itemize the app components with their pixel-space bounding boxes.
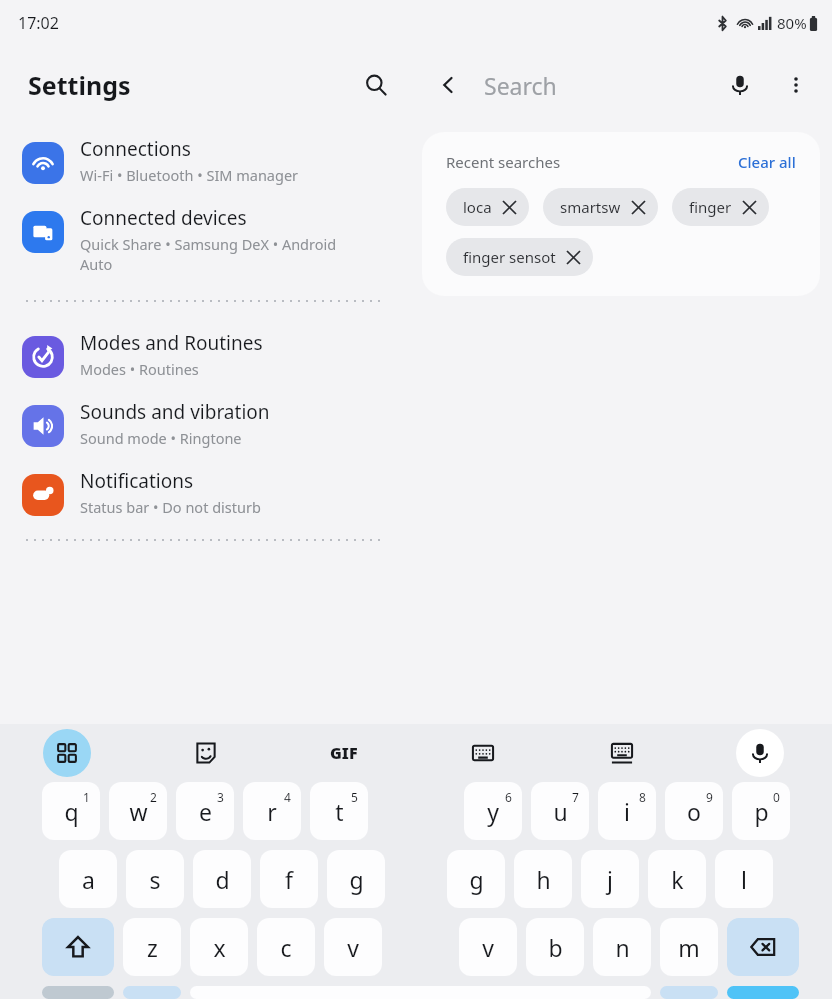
button[interactable]: finger xyxy=(672,188,769,226)
button[interactable]: Voice search xyxy=(716,61,764,109)
button[interactable]: a xyxy=(59,850,117,908)
button[interactable]: m xyxy=(660,918,718,976)
button[interactable]: More options xyxy=(772,61,820,109)
button[interactable]: Voice input xyxy=(736,729,784,777)
staticText: 3 xyxy=(217,789,224,805)
staticText: GIF xyxy=(330,742,358,764)
button[interactable]: Modes and Routines xyxy=(0,330,416,379)
staticText: Connections xyxy=(80,136,191,162)
button[interactable]: t xyxy=(310,782,368,840)
button[interactable]: r xyxy=(243,782,301,840)
button[interactable]: w xyxy=(109,782,167,840)
button[interactable]: n xyxy=(593,918,651,976)
staticText: x xyxy=(213,932,226,963)
button[interactable]: GIF xyxy=(318,727,370,779)
button[interactable]: k xyxy=(648,850,706,908)
button[interactable]: d xyxy=(193,850,251,908)
staticText: Modes • Routines xyxy=(80,359,199,379)
button[interactable]: j xyxy=(581,850,639,908)
staticText: v xyxy=(482,932,494,963)
staticText: 1 xyxy=(83,789,90,805)
button[interactable] xyxy=(727,986,799,999)
button[interactable]: Notifications xyxy=(0,468,416,517)
staticText: b xyxy=(548,932,563,963)
button[interactable]: Back xyxy=(424,61,472,109)
staticText: 5 xyxy=(351,789,358,805)
staticText: 8 xyxy=(639,789,646,805)
button[interactable]: e xyxy=(176,782,234,840)
button[interactable]: p xyxy=(732,782,790,840)
button[interactable]: smartsw xyxy=(543,188,658,226)
staticText: o xyxy=(687,796,701,827)
button[interactable]: loca xyxy=(446,188,529,226)
staticText: v xyxy=(347,932,359,963)
button[interactable]: Keyboard settings xyxy=(598,729,646,777)
staticText: 7 xyxy=(572,789,579,805)
button[interactable]: g xyxy=(447,850,505,908)
staticText: g xyxy=(349,864,364,895)
button[interactable]: Connected devices xyxy=(0,205,416,274)
staticText: q xyxy=(64,796,79,827)
button[interactable]: z xyxy=(123,918,181,976)
staticText: Recent searches xyxy=(446,152,561,172)
button[interactable]: v xyxy=(459,918,517,976)
staticText: w xyxy=(129,796,148,827)
staticText: c xyxy=(280,932,292,963)
staticText: finger sensot xyxy=(463,247,556,267)
button[interactable]: finger sensot xyxy=(446,238,593,276)
button[interactable]: y xyxy=(464,782,522,840)
staticText: smartsw xyxy=(560,197,621,217)
button[interactable] xyxy=(42,986,114,999)
button[interactable]: i xyxy=(598,782,656,840)
staticText: finger xyxy=(689,197,732,217)
staticText: j xyxy=(607,864,613,895)
staticText: 6 xyxy=(505,789,512,805)
button[interactable]: Stickers xyxy=(182,729,230,777)
staticText: z xyxy=(147,932,158,963)
button[interactable]: o xyxy=(665,782,723,840)
button[interactable] xyxy=(123,986,181,999)
button[interactable]: Shift xyxy=(42,918,114,976)
staticText: m xyxy=(678,932,700,963)
staticText: d xyxy=(215,864,230,895)
button[interactable]: Clear all xyxy=(738,152,796,172)
button[interactable]: b xyxy=(526,918,584,976)
staticText: loca xyxy=(463,197,492,217)
button[interactable]: q xyxy=(42,782,100,840)
button[interactable]: v xyxy=(324,918,382,976)
button[interactable]: h xyxy=(514,850,572,908)
staticText: Sound mode • Ringtone xyxy=(80,428,242,448)
staticText: Status bar • Do not disturb xyxy=(80,497,261,517)
staticText: Quick Share • Samsung DeX • Android Auto xyxy=(80,234,337,274)
staticText: 9 xyxy=(706,789,713,805)
button[interactable]: f xyxy=(260,850,318,908)
button[interactable]: Backspace xyxy=(727,918,799,976)
button[interactable]: Keyboard layout xyxy=(459,729,507,777)
staticText: p xyxy=(754,796,769,827)
button[interactable]: g xyxy=(327,850,385,908)
staticText: 4 xyxy=(284,789,291,805)
staticText: e xyxy=(199,796,212,827)
button[interactable]: x xyxy=(190,918,248,976)
staticText: Notifications xyxy=(80,468,194,494)
button[interactable]: u xyxy=(531,782,589,840)
staticText: 2 xyxy=(150,789,157,805)
staticText: u xyxy=(553,796,568,827)
staticText: h xyxy=(536,864,551,895)
staticText: n xyxy=(615,932,630,963)
staticText: Settings xyxy=(28,68,131,102)
staticText: Modes and Routines xyxy=(80,330,263,356)
button[interactable]: c xyxy=(257,918,315,976)
button[interactable]: Keyboard modes xyxy=(43,729,91,777)
button[interactable]: s xyxy=(126,850,184,908)
staticText: Clear all xyxy=(738,152,796,172)
staticText: Search xyxy=(484,70,557,101)
staticText: 80% xyxy=(777,13,807,33)
button[interactable]: Sounds and vibration xyxy=(0,399,416,448)
button[interactable]: Connections xyxy=(0,136,416,185)
button[interactable]: Search xyxy=(352,61,400,109)
button[interactable]: l xyxy=(715,850,773,908)
button[interactable] xyxy=(660,986,718,999)
staticText: Wi-Fi • Bluetooth • SIM manager xyxy=(80,165,299,185)
